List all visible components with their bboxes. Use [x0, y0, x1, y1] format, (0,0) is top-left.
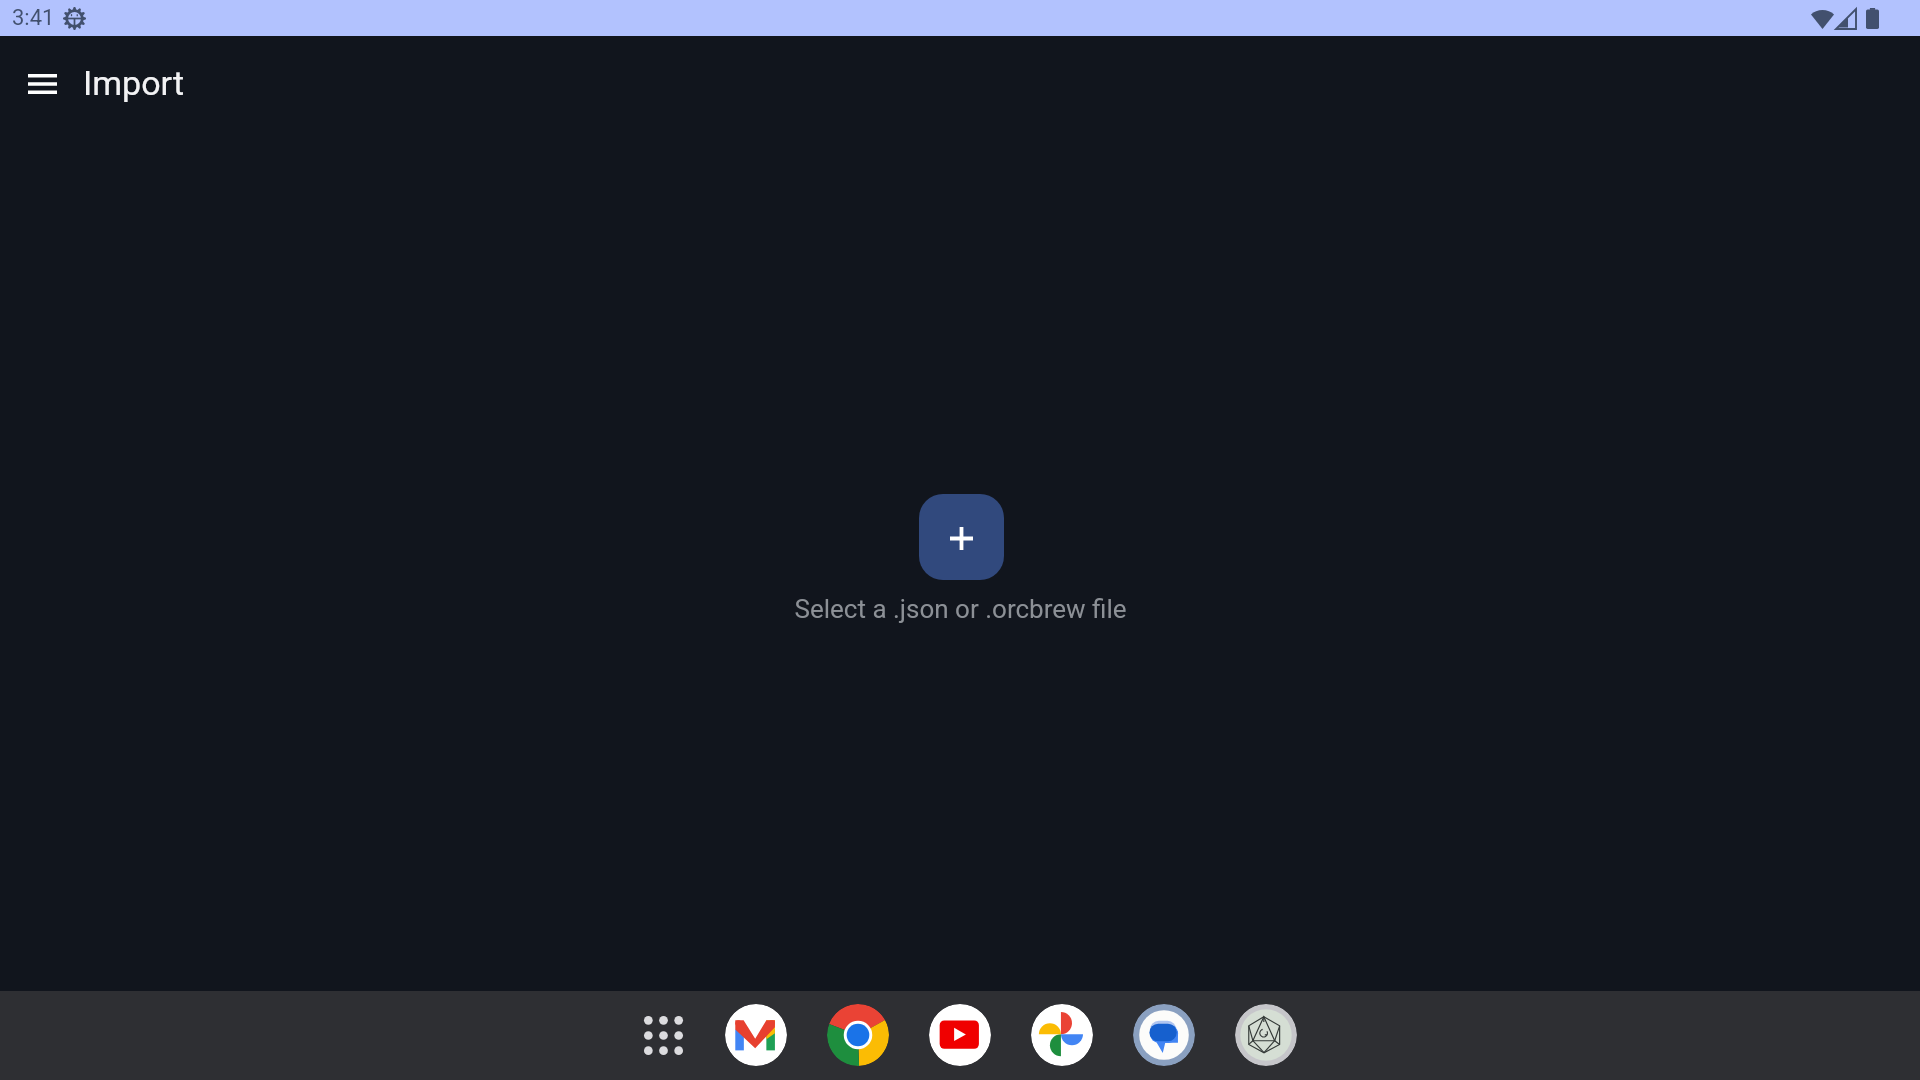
button[interactable]: Chrome: [827, 1004, 889, 1066]
button[interactable]: Dice roller: [1235, 1004, 1297, 1066]
button[interactable]: Gmail: [725, 1004, 787, 1066]
button[interactable]: Messages: [1133, 1004, 1195, 1066]
button[interactable]: YouTube: [929, 1004, 991, 1066]
staticText: 3:41: [12, 5, 55, 31]
button[interactable]: All apps: [632, 1004, 694, 1066]
button[interactable]: Add file: [919, 494, 1004, 580]
button[interactable]: Open navigation menu: [11, 53, 73, 115]
staticText: Select a .json or .orcbrew file: [794, 594, 1127, 624]
staticText: Import: [83, 63, 185, 103]
button[interactable]: Google Photos: [1031, 1004, 1093, 1066]
